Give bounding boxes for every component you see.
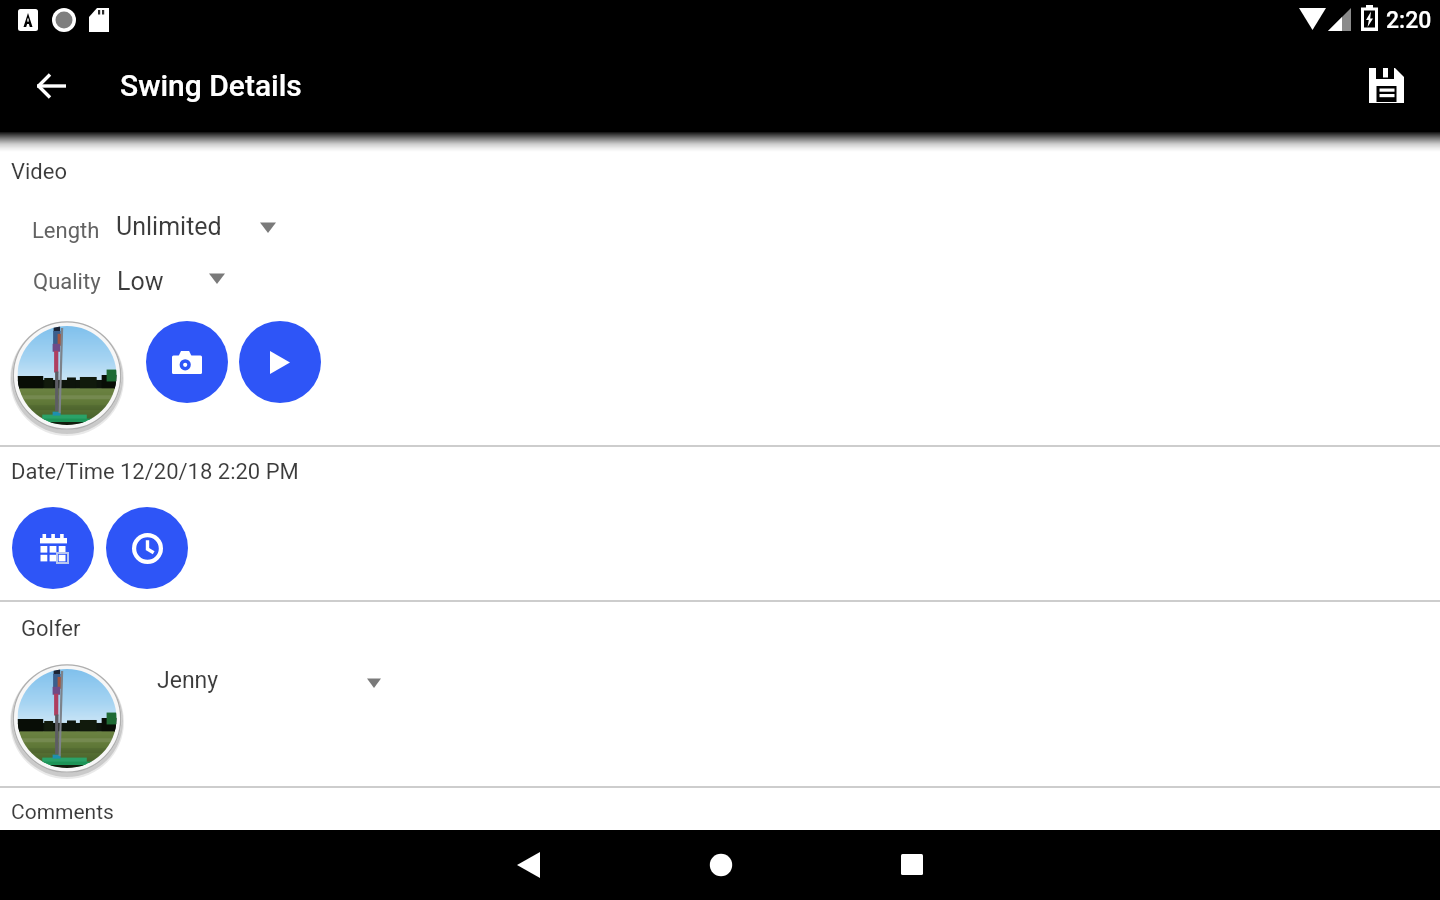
staticText: Video <box>11 159 67 185</box>
staticText: Unlimited <box>116 212 222 241</box>
button[interactable]: Home <box>665 830 777 900</box>
button[interactable]: Back <box>473 830 585 900</box>
staticText: Date/Time <box>11 459 115 485</box>
button[interactable]: Navigate up <box>28 62 76 110</box>
button[interactable]: Save <box>1361 60 1411 110</box>
staticText: Low <box>117 267 164 296</box>
button[interactable]: Jenny <box>140 655 402 709</box>
button[interactable]: Play video <box>239 321 321 403</box>
button[interactable]: Length <box>18 206 290 256</box>
staticText: 2:20 <box>1386 7 1432 34</box>
button[interactable]: Swing photo <box>11 663 123 775</box>
staticText: Golfer <box>21 616 81 642</box>
staticText: Comments <box>11 800 114 825</box>
button[interactable]: Pick date <box>12 507 94 589</box>
button[interactable]: Take photo <box>146 321 228 403</box>
staticText: 12/20/18 2:20 PM <box>120 459 299 485</box>
button[interactable]: Recent apps <box>856 830 968 900</box>
button[interactable]: Pick time <box>106 507 188 589</box>
staticText: Quality <box>33 269 101 295</box>
staticText: Length <box>32 218 100 244</box>
staticText: Swing Details <box>120 68 302 103</box>
button[interactable]: Swing photo <box>11 320 123 432</box>
staticText: Jenny <box>157 667 219 694</box>
button[interactable]: Quality <box>19 257 239 307</box>
